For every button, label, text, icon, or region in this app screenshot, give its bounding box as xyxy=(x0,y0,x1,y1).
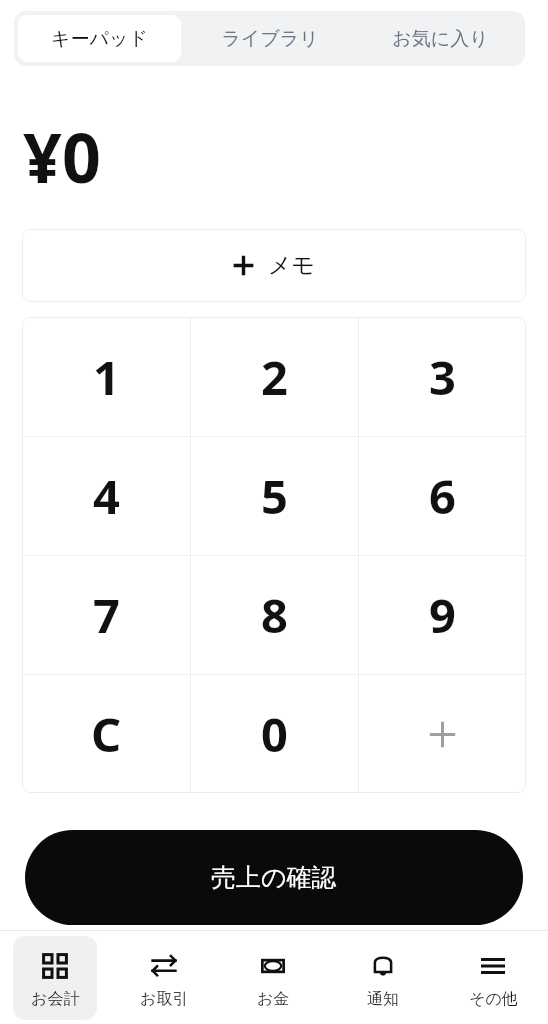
staticText: 5 xyxy=(261,464,288,528)
button[interactable]: 9 xyxy=(359,556,526,674)
button[interactable]: キーパッド xyxy=(18,15,181,62)
button[interactable]: メモ xyxy=(22,229,526,302)
staticText: 6 xyxy=(429,464,456,528)
staticText: メモ xyxy=(268,251,316,280)
button[interactable]: 6 xyxy=(359,437,526,555)
staticText: 0 xyxy=(261,702,288,766)
button[interactable]: 8 xyxy=(191,556,358,674)
button[interactable]: C xyxy=(22,675,190,793)
button[interactable]: お取引 xyxy=(122,936,206,1020)
button[interactable]: 売上の確認 xyxy=(25,830,523,925)
button[interactable]: お気に入り xyxy=(359,15,521,62)
staticText: その他 xyxy=(469,989,518,1009)
button[interactable]: お会計 xyxy=(13,936,97,1020)
button[interactable]: 0 xyxy=(191,675,358,793)
staticText: 7 xyxy=(93,583,120,647)
staticText: お会計 xyxy=(31,989,80,1009)
staticText: 通知 xyxy=(367,989,399,1009)
button[interactable]: お金 xyxy=(231,936,315,1020)
staticText: 売上の確認 xyxy=(211,862,337,893)
staticText: キーパッド xyxy=(51,27,148,51)
staticText: お金 xyxy=(257,989,290,1009)
staticText: ライブラリ xyxy=(221,27,319,51)
button[interactable]: 2 xyxy=(191,317,358,436)
button[interactable]: 5 xyxy=(191,437,358,555)
button[interactable]: その他 xyxy=(451,936,535,1020)
staticText: お取引 xyxy=(140,989,189,1009)
button[interactable]: 通知 xyxy=(341,936,425,1020)
button[interactable]: ライブラリ xyxy=(189,15,351,62)
staticText: 1 xyxy=(93,345,120,409)
staticText: 2 xyxy=(261,345,288,409)
staticText: ¥0 xyxy=(23,110,101,203)
staticText: C xyxy=(91,702,122,766)
button[interactable]: 7 xyxy=(22,556,190,674)
staticText: 4 xyxy=(93,464,120,528)
staticText: お気に入り xyxy=(392,27,489,51)
staticText: 9 xyxy=(429,583,456,647)
staticText: 8 xyxy=(261,583,288,647)
button[interactable] xyxy=(359,675,526,793)
staticText: 3 xyxy=(429,345,456,409)
button[interactable]: 1 xyxy=(22,317,190,436)
button[interactable]: 3 xyxy=(359,317,526,436)
button[interactable]: 4 xyxy=(22,437,190,555)
